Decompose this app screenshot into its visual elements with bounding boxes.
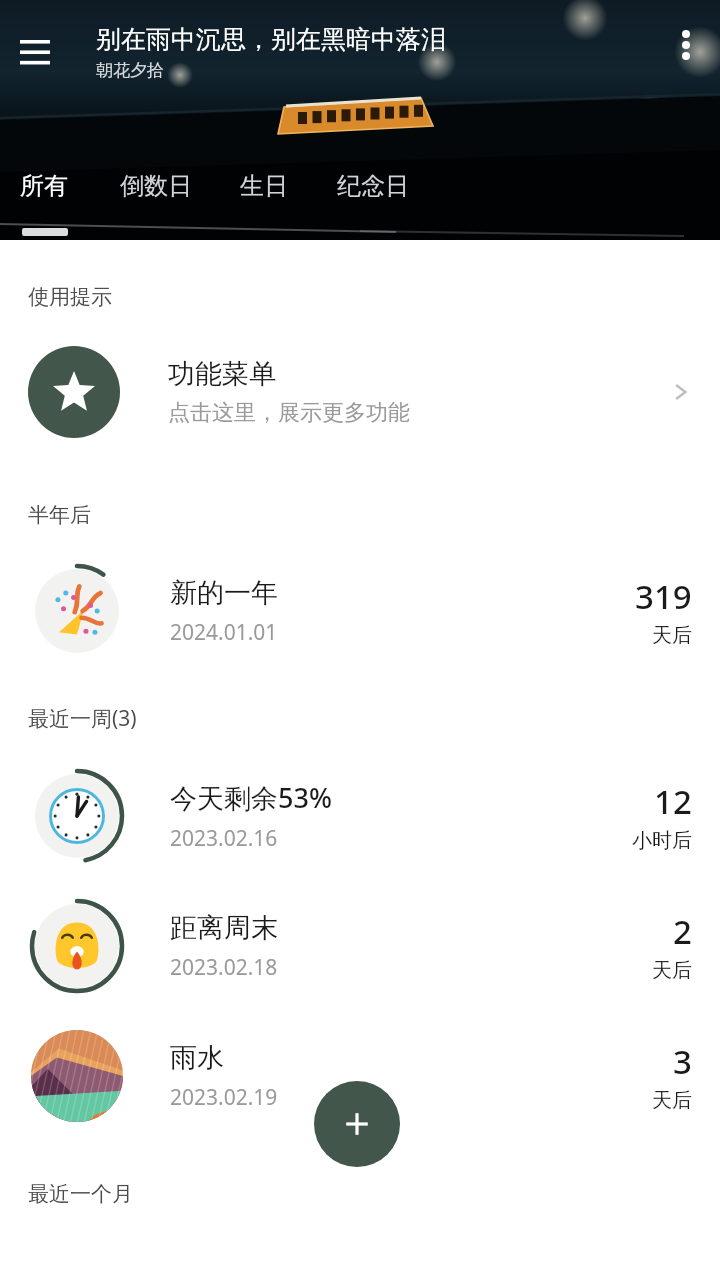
button[interactable]: 新的一年	[0, 558, 720, 664]
staticText: 雨水	[170, 1041, 224, 1075]
button[interactable]: More options	[664, 23, 708, 67]
staticText: 朝花夕拾	[96, 60, 164, 81]
button[interactable]: Menu	[14, 30, 56, 72]
staticText: 天后	[652, 1088, 692, 1113]
staticText: 2023.02.18	[170, 953, 278, 982]
staticText: 3	[673, 1039, 692, 1084]
staticText: 2	[673, 909, 692, 954]
staticText: 今天剩余53%	[170, 779, 332, 816]
button[interactable]: 今天剩余53%	[0, 763, 720, 869]
button[interactable]: 所有	[10, 160, 78, 212]
button[interactable]: Add	[314, 1081, 400, 1167]
staticText: 天后	[652, 623, 692, 648]
staticText: 点击这里，展示更多功能	[168, 399, 410, 427]
staticText: 半年后	[28, 502, 91, 528]
staticText: 别在雨中沉思，别在黑暗中落泪	[96, 24, 446, 55]
staticText: 生日	[240, 171, 288, 201]
button[interactable]: 雨水	[0, 1023, 720, 1129]
staticText: 319	[635, 574, 692, 619]
button[interactable]: 功能菜单	[0, 342, 720, 442]
staticText: 2024.01.01	[170, 618, 278, 647]
staticText: 所有	[20, 171, 68, 201]
staticText: 天后	[652, 958, 692, 983]
staticText: 2023.02.19	[170, 1083, 278, 1112]
button[interactable]: 距离周末	[0, 893, 720, 999]
staticText: 倒数日	[120, 171, 192, 201]
staticText: 2023.02.16	[170, 824, 278, 853]
staticText: 12	[654, 779, 692, 824]
staticText: 最近一个月	[28, 1181, 133, 1207]
staticText: 最近一周(3)	[28, 704, 137, 733]
button[interactable]: 生日	[230, 160, 298, 212]
button[interactable]: 纪念日	[327, 160, 419, 212]
staticText: 新的一年	[170, 576, 278, 610]
staticText: 使用提示	[28, 284, 112, 310]
staticText: 距离周末	[170, 911, 278, 945]
staticText: 纪念日	[337, 171, 409, 201]
staticText: 功能菜单	[168, 357, 276, 391]
button[interactable]: 倒数日	[110, 160, 202, 212]
staticText: 小时后	[632, 828, 692, 853]
